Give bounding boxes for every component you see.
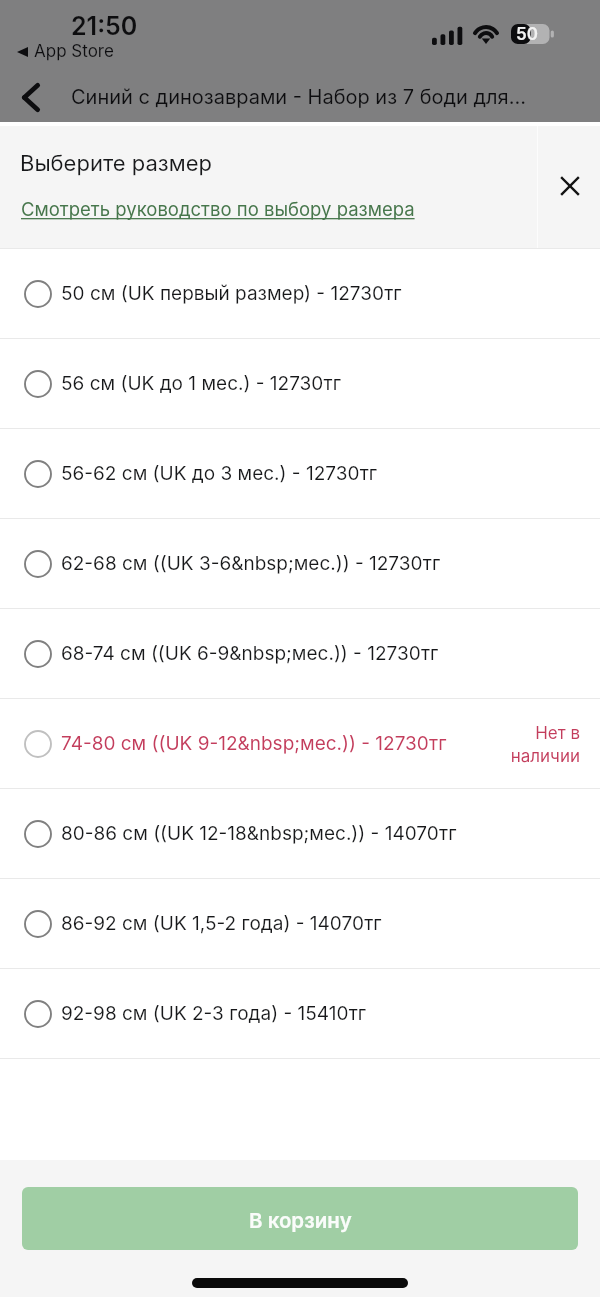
staticText: Выберите размер bbox=[20, 150, 212, 177]
staticText: В корзину bbox=[249, 1208, 352, 1233]
button[interactable]: 80-86 см ((UK 12-18&nbsp;мес.)) - 14070т… bbox=[0, 789, 600, 878]
staticText: App Store bbox=[34, 41, 114, 62]
button[interactable]: Close bbox=[538, 126, 600, 248]
staticText: 92-98 см (UK 2-3 года) - 15410тг bbox=[61, 1002, 367, 1025]
button[interactable]: 74-80 см ((UK 9-12&nbsp;мес.)) - 12730тг bbox=[0, 699, 600, 788]
staticText: 68-74 см ((UK 6-9&nbsp;мес.)) - 12730тг bbox=[61, 642, 439, 665]
button[interactable]: 50 см (UK первый размер) - 12730тг bbox=[0, 249, 600, 338]
button[interactable]: Смотреть руководство по выбору размера bbox=[21, 198, 415, 220]
staticText: 62-68 см ((UK 3-6&nbsp;мес.)) - 12730тг bbox=[61, 552, 441, 575]
button[interactable]: 86-92 см (UK 1,5-2 года) - 14070тг bbox=[0, 879, 600, 968]
button[interactable]: 56 см (UK до 1 мес.) - 12730тг bbox=[0, 339, 600, 428]
staticText: 21:50 bbox=[71, 11, 138, 41]
staticText: 50 bbox=[516, 24, 538, 44]
staticText: 80-86 см ((UK 12-18&nbsp;мес.)) - 14070т… bbox=[61, 822, 457, 845]
staticText: 56-62 см (UK до 3 мес.) - 12730тг bbox=[61, 462, 378, 485]
staticText: Нет в наличии bbox=[510, 723, 580, 767]
button[interactable]: В корзину bbox=[22, 1187, 578, 1250]
button[interactable]: 92-98 см (UK 2-3 года) - 15410тг bbox=[0, 969, 600, 1058]
button[interactable]: 62-68 см ((UK 3-6&nbsp;мес.)) - 12730тг bbox=[0, 519, 600, 608]
staticText: 86-92 см (UK 1,5-2 года) - 14070тг bbox=[61, 912, 382, 935]
button[interactable]: 56-62 см (UK до 3 мес.) - 12730тг bbox=[0, 429, 600, 518]
staticText: 56 см (UK до 1 мес.) - 12730тг bbox=[61, 372, 341, 395]
staticText: Синий с динозаврами - Набор из 7 боди дл… bbox=[71, 85, 533, 109]
staticText: 74-80 см ((UK 9-12&nbsp;мес.)) - 12730тг bbox=[61, 732, 447, 755]
button[interactable]: Back bbox=[0, 67, 62, 121]
staticText: 50 см (UK первый размер) - 12730тг bbox=[61, 282, 402, 305]
button[interactable]: 68-74 см ((UK 6-9&nbsp;мес.)) - 12730тг bbox=[0, 609, 600, 698]
